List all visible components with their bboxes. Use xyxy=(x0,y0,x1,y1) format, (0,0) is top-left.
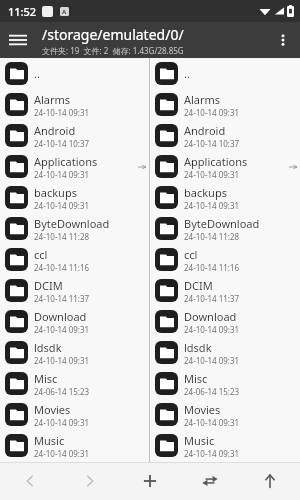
button[interactable]: Download xyxy=(150,306,300,337)
staticText: 文件夹: 19 文件: 2 储存: 1.43G/28.85G xyxy=(42,45,184,56)
button[interactable]: backups xyxy=(150,182,300,213)
button[interactable]: Open navigation menu xyxy=(0,22,36,58)
button[interactable]: Navigate back xyxy=(0,462,60,500)
staticText: 11:52 xyxy=(8,4,37,19)
staticText: 24-10-14 09:31 xyxy=(34,200,90,211)
staticText: 24-10-14 09:31 xyxy=(34,355,90,366)
staticText: 24-10-14 09:31 xyxy=(34,324,90,335)
staticText: Movies xyxy=(34,402,71,417)
staticText: Download xyxy=(184,309,237,324)
staticText: 24-10-14 09:31 xyxy=(184,169,240,180)
button[interactable]: Applications xyxy=(0,151,149,182)
staticText: ByteDownload xyxy=(184,216,260,231)
staticText: 24-10-14 09:31 xyxy=(184,355,240,366)
staticText: ByteDownload xyxy=(34,216,110,231)
staticText: 24-10-14 11:16 xyxy=(184,262,240,273)
staticText: 24-10-14 09:31 xyxy=(34,107,90,118)
staticText: 24-10-14 09:31 xyxy=(34,448,90,459)
button[interactable]: ccl xyxy=(150,244,300,275)
button[interactable]: Applications xyxy=(150,151,300,182)
staticText: ldsdk xyxy=(34,340,62,355)
button[interactable]: ByteDownload xyxy=(0,213,149,244)
staticText: Music xyxy=(34,433,65,448)
staticText: /storage/emulated/0/ xyxy=(42,25,184,44)
staticText: Misc xyxy=(34,371,58,386)
button[interactable]: backups xyxy=(0,182,149,213)
staticText: 24-10-14 10:37 xyxy=(184,138,240,149)
staticText: 24-10-14 11:37 xyxy=(34,293,90,304)
staticText: 24-10-14 09:31 xyxy=(184,200,240,211)
button[interactable]: Misc xyxy=(0,368,149,399)
staticText: DCIM xyxy=(34,278,63,293)
staticText: ccl xyxy=(34,247,48,262)
staticText: 24-10-14 11:37 xyxy=(184,293,240,304)
staticText: Applications xyxy=(184,154,248,169)
button[interactable]: ccl xyxy=(0,244,149,275)
button[interactable]: Go up xyxy=(240,462,300,500)
button[interactable]: Android xyxy=(0,120,149,151)
staticText: Alarms xyxy=(184,92,221,107)
staticText: 24-10-14 11:16 xyxy=(34,262,90,273)
staticText: 24-10-14 09:31 xyxy=(184,107,240,118)
staticText: 24-10-14 09:31 xyxy=(184,417,240,428)
staticText: ccl xyxy=(184,247,198,262)
staticText: 24-10-14 11:28 xyxy=(34,231,90,242)
staticText: DCIM xyxy=(184,278,213,293)
staticText: Movies xyxy=(184,402,221,417)
staticText: backups xyxy=(184,185,227,200)
button[interactable]: .. xyxy=(150,58,300,89)
staticText: .. xyxy=(34,66,40,81)
button[interactable]: Android xyxy=(150,120,300,151)
staticText: Applications xyxy=(34,154,98,169)
button[interactable]: DCIM xyxy=(150,275,300,306)
button[interactable]: Alarms xyxy=(0,89,149,120)
staticText: 24-10-14 09:31 xyxy=(184,448,240,459)
button[interactable]: Movies xyxy=(0,399,149,430)
staticText: 24-10-14 11:28 xyxy=(184,231,240,242)
staticText: 24-10-14 09:31 xyxy=(34,169,90,180)
button[interactable]: ldsdk xyxy=(0,337,149,368)
button[interactable]: Misc xyxy=(150,368,300,399)
staticText: Download xyxy=(34,309,87,324)
button[interactable]: Music xyxy=(0,430,149,461)
staticText: Android xyxy=(184,123,226,138)
staticText: Music xyxy=(184,433,215,448)
button[interactable]: DCIM xyxy=(0,275,149,306)
staticText: 24-06-14 15:23 xyxy=(34,386,90,397)
button[interactable]: ByteDownload xyxy=(150,213,300,244)
staticText: Android xyxy=(34,123,76,138)
staticText: Alarms xyxy=(34,92,71,107)
button[interactable]: .. xyxy=(0,58,149,89)
button[interactable]: Alarms xyxy=(150,89,300,120)
button[interactable]: Download xyxy=(0,306,149,337)
button[interactable]: Music xyxy=(150,430,300,461)
staticText: .. xyxy=(184,66,190,81)
button[interactable]: Switch panes xyxy=(180,462,240,500)
staticText: Misc xyxy=(184,371,208,386)
staticText: ldsdk xyxy=(184,340,212,355)
staticText: 24-10-14 09:31 xyxy=(184,324,240,335)
button[interactable]: More options xyxy=(266,23,300,57)
staticText: A xyxy=(62,8,67,16)
button[interactable]: ldsdk xyxy=(150,337,300,368)
button[interactable]: Add xyxy=(120,462,180,500)
staticText: backups xyxy=(34,185,77,200)
staticText: 24-10-14 10:37 xyxy=(34,138,90,149)
button[interactable]: Movies xyxy=(150,399,300,430)
staticText: 24-10-14 09:31 xyxy=(34,417,90,428)
staticText: 24-06-14 15:23 xyxy=(184,386,240,397)
button[interactable]: Navigate forward xyxy=(60,462,120,500)
